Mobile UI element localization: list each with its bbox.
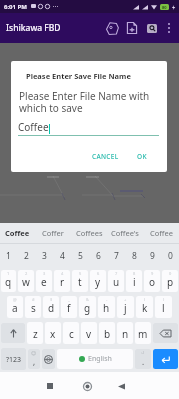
button[interactable]: b [99, 322, 115, 344]
staticText: v [86, 327, 92, 341]
button[interactable]: k [136, 296, 153, 318]
button[interactable]: y [90, 270, 106, 292]
button[interactable]: x [45, 322, 61, 344]
button[interactable]: 8 [125, 244, 143, 268]
staticText: 5 [78, 250, 83, 262]
staticText: Coffer [42, 228, 64, 238]
staticText: 1 [6, 250, 11, 262]
button[interactable]: w [18, 270, 34, 292]
button[interactable]: Space [57, 349, 133, 369]
button[interactable]: 1 [0, 244, 17, 268]
button[interactable]: CANCEL [88, 149, 123, 164]
button[interactable]: o [144, 270, 160, 292]
staticText: 8 [133, 271, 136, 276]
button[interactable]: Coffer [35, 223, 71, 243]
button[interactable]: g [79, 296, 96, 318]
button[interactable]: Coffee's [107, 223, 143, 243]
staticText: z [33, 327, 38, 341]
staticText: 7 [115, 271, 118, 276]
button[interactable]: q [1, 270, 16, 292]
staticText: n [122, 327, 129, 341]
staticText: ?123 [6, 355, 22, 365]
button[interactable]: l [155, 296, 172, 318]
staticText: 5 [79, 271, 82, 276]
button[interactable]: New file [122, 18, 142, 38]
button[interactable]: h [98, 296, 115, 318]
staticText: CANCEL [92, 152, 119, 161]
button[interactable]: 5 [71, 244, 89, 268]
staticText: g [84, 301, 91, 315]
button[interactable]: j [117, 296, 134, 318]
button[interactable]: Enter [153, 349, 178, 369]
staticText: ) [163, 297, 165, 302]
button[interactable]: Comma [28, 349, 40, 369]
staticText: m [138, 327, 148, 341]
button[interactable]: s [25, 296, 41, 318]
button[interactable]: 0 [161, 244, 179, 268]
staticText: Ishikawa FBD [6, 22, 61, 34]
button[interactable]: Diagram [102, 18, 122, 38]
staticText: 4 [60, 250, 65, 262]
button[interactable]: m [135, 322, 151, 344]
staticText: b [104, 327, 111, 341]
button[interactable]: n [117, 322, 133, 344]
staticText: ☺ [31, 350, 37, 356]
button[interactable]: Change language [42, 349, 55, 369]
staticText: + [124, 297, 127, 302]
button[interactable]: t [72, 270, 88, 292]
staticText: 0 [168, 250, 173, 262]
staticText: :-) [141, 350, 145, 355]
staticText: i [133, 275, 136, 289]
button[interactable]: p [162, 270, 178, 292]
button[interactable]: Recents [40, 376, 60, 396]
button[interactable]: 3 [35, 244, 53, 268]
button[interactable]: a [7, 296, 23, 318]
button[interactable]: Coffees [71, 223, 107, 243]
button[interactable]: d [43, 296, 59, 318]
button[interactable]: r [54, 270, 70, 292]
button[interactable]: e [36, 270, 52, 292]
staticText: j [124, 301, 127, 315]
staticText: 9 [150, 250, 155, 262]
button[interactable]: v [81, 322, 97, 344]
button[interactable]: 4 [53, 244, 71, 268]
button[interactable]: Coffee [143, 223, 179, 243]
staticText: e [41, 275, 47, 289]
staticText: f [67, 301, 71, 315]
staticText: Coffees [76, 228, 103, 238]
staticText: _ [68, 297, 70, 302]
button[interactable]: More options [162, 21, 176, 35]
button[interactable]: Shift [1, 323, 25, 343]
button[interactable]: 7 [107, 244, 125, 268]
button[interactable]: OK [133, 149, 151, 164]
button[interactable]: Backspace [153, 323, 178, 343]
button[interactable]: i [126, 270, 142, 292]
button[interactable]: z [27, 322, 43, 344]
staticText: 6 [97, 271, 100, 276]
staticText: 3 [42, 250, 47, 262]
staticText: c [69, 327, 74, 341]
staticText: 9 [151, 271, 154, 276]
button[interactable]: Period [135, 349, 151, 369]
button[interactable]: 9 [143, 244, 161, 268]
button[interactable]: Home [77, 376, 97, 396]
staticText: Coffee [18, 120, 49, 134]
staticText: . [142, 356, 145, 367]
button[interactable]: Back [111, 376, 131, 396]
staticText: Coffee's [111, 228, 139, 238]
button[interactable]: ?123 [1, 348, 26, 370]
staticText: English [88, 354, 112, 364]
staticText: p [167, 275, 174, 289]
staticText: 80 [162, 5, 167, 10]
button[interactable]: u [108, 270, 124, 292]
button[interactable]: 6 [89, 244, 107, 268]
staticText: 3 [43, 271, 46, 276]
button[interactable]: f [61, 296, 77, 318]
staticText: $ [50, 297, 53, 302]
button[interactable]: 2 [17, 244, 35, 268]
staticText: x [50, 327, 56, 341]
button[interactable]: Search [142, 18, 162, 38]
button[interactable]: c [63, 322, 79, 344]
button[interactable]: Coffee [0, 223, 35, 243]
staticText: r [60, 275, 65, 289]
